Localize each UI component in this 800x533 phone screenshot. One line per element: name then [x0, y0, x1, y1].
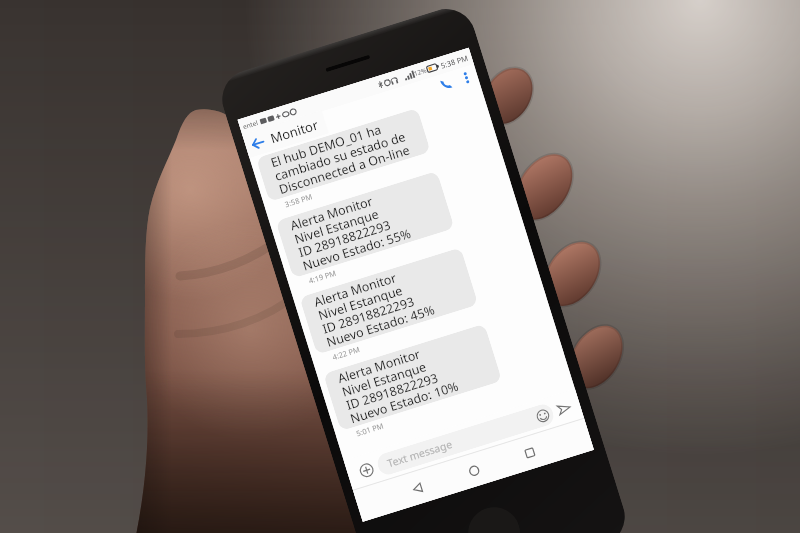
button[interactable]: Recent apps [515, 438, 545, 468]
staticText: Alerta Monitor Nivel Estanque ID 2891882… [336, 337, 461, 426]
staticText: 5:38 PM [439, 52, 470, 71]
button[interactable]: More options [456, 68, 476, 88]
button[interactable]: Navigate up [242, 110, 329, 158]
button[interactable]: Alerta Monitor Nivel Estanque ID 2891882… [323, 324, 502, 431]
button[interactable]: Alerta Monitor Nivel Estanque ID 2891882… [275, 171, 455, 278]
staticText: Text message [386, 437, 454, 470]
button[interactable]: El hub DEMO_01 ha cambiado su estado de … [256, 108, 431, 202]
staticText: Monitor [268, 116, 320, 147]
staticText: entel [242, 118, 260, 131]
staticText: 4:22 PM [331, 344, 362, 362]
other: Navigate up [247, 133, 269, 154]
button[interactable]: Back [402, 473, 432, 503]
staticText: 3:58 PM [283, 191, 314, 209]
button[interactable]: Attach [355, 459, 378, 481]
button[interactable]: Send [552, 396, 577, 421]
button[interactable]: Home [459, 455, 489, 485]
staticText: 4:19 PM [307, 267, 338, 286]
button[interactable]: Call [434, 71, 459, 96]
button[interactable]: Text message [375, 402, 556, 477]
staticText: 5:01 PM [355, 420, 385, 438]
button[interactable]: Alerta Monitor Nivel Estanque ID 2891882… [299, 247, 478, 355]
staticText: Alerta Monitor Nivel Estanque ID 2891882… [288, 185, 413, 274]
button[interactable]: Emoji [532, 405, 552, 425]
staticText: Alerta Monitor Nivel Estanque ID 2891882… [312, 261, 437, 350]
staticText: El hub DEMO_01 ha cambiado su estado de … [268, 115, 411, 197]
staticText: 12% [413, 66, 428, 78]
